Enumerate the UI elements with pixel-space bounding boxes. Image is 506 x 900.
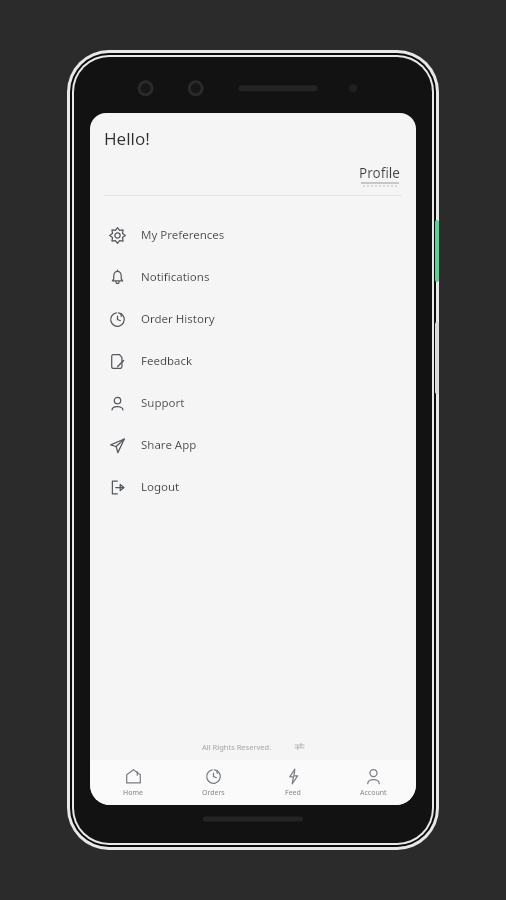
staticText: Logout: [141, 479, 180, 495]
staticText: Feed: [285, 788, 301, 798]
staticText: All Rights Reserved.: [202, 742, 272, 752]
staticText: Profile: [359, 164, 400, 182]
button[interactable]: Profile: [359, 164, 400, 187]
staticText: Share App: [141, 437, 197, 453]
button[interactable]: Feedback: [90, 340, 416, 382]
staticText: Account: [360, 788, 387, 798]
button[interactable]: Logout: [90, 466, 416, 508]
button[interactable]: Order History: [90, 298, 416, 340]
staticText: Notifications: [141, 269, 210, 285]
button[interactable]: Orders: [176, 760, 250, 805]
button[interactable]: Share App: [90, 424, 416, 466]
staticText: Orders: [202, 788, 225, 798]
staticText: Order History: [141, 311, 215, 327]
button[interactable]: Feed: [256, 760, 330, 805]
button[interactable]: Account: [336, 760, 410, 805]
staticText: Hello!: [104, 127, 150, 150]
button[interactable]: Support: [90, 382, 416, 424]
staticText: Feedback: [141, 353, 193, 369]
staticText: My Preferences: [141, 227, 225, 243]
staticText: Home: [123, 788, 143, 798]
staticText: Support: [141, 395, 185, 411]
button[interactable]: Notifications: [90, 256, 416, 298]
button[interactable]: My Preferences: [90, 214, 416, 256]
button[interactable]: Home: [96, 760, 170, 805]
